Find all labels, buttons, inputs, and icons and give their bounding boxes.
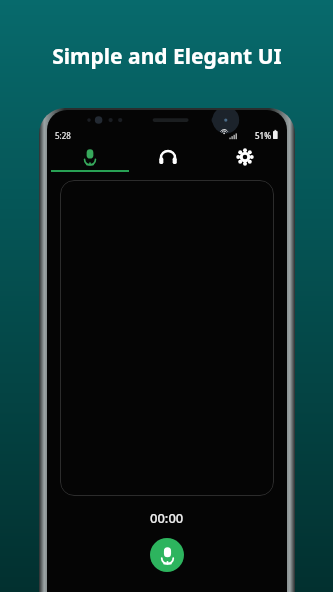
staticText: 51%	[255, 130, 271, 141]
staticText: 00:00	[150, 509, 184, 527]
button[interactable]: Player	[129, 144, 206, 172]
button[interactable]: Start recording	[150, 538, 184, 572]
button[interactable]: Recorder	[51, 144, 129, 172]
button[interactable]: Settings	[206, 144, 283, 172]
staticText: Simple and Elegant UI	[52, 42, 282, 71]
staticText: 5:28	[55, 130, 71, 141]
